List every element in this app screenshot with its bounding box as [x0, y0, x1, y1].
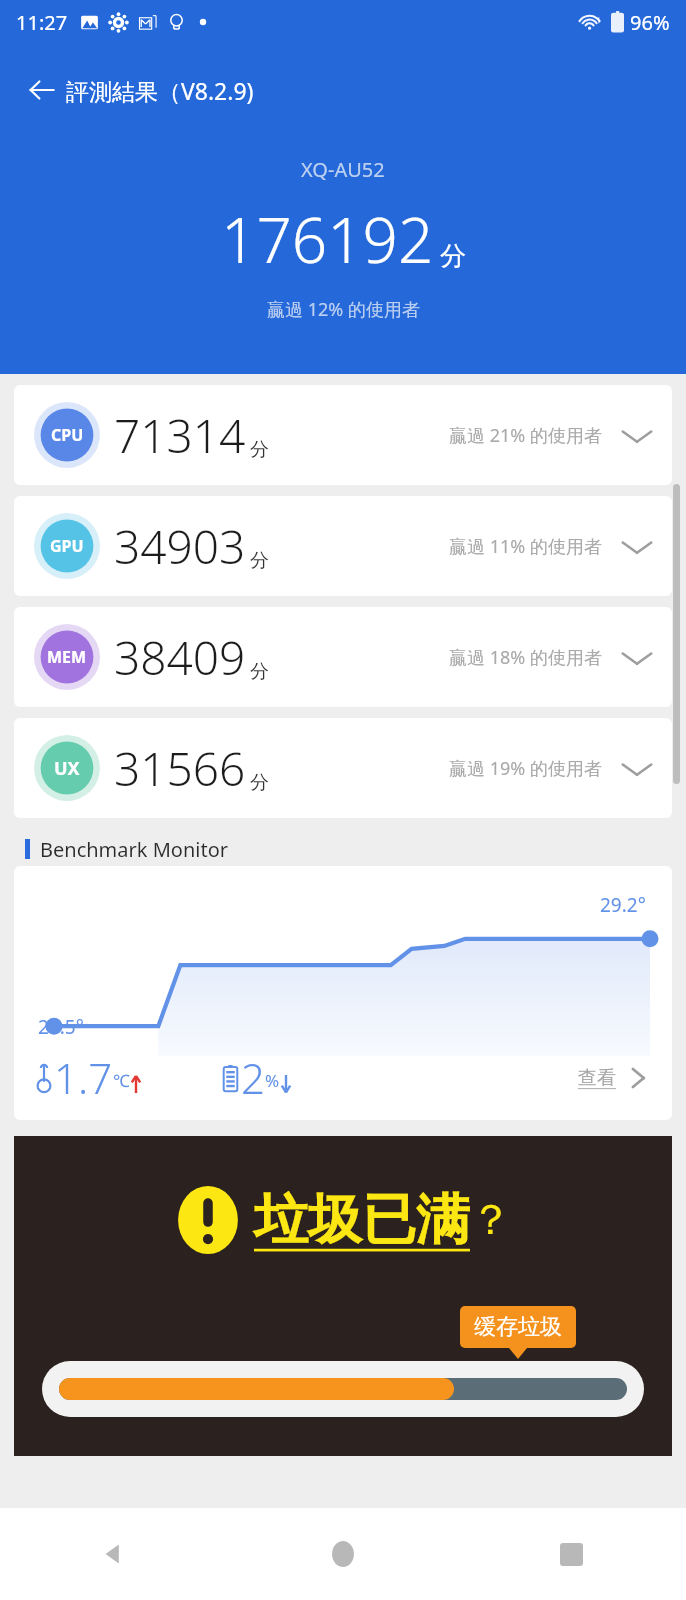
staticText: 176192	[221, 197, 434, 281]
staticText: 贏過 11% 的使用者	[449, 534, 602, 559]
staticText: CPU	[51, 424, 84, 446]
staticText: 垃圾已满	[254, 1186, 470, 1254]
staticText: 分	[440, 240, 466, 273]
staticText: MEM	[47, 646, 87, 668]
staticText: 1.7	[54, 1049, 113, 1106]
staticText: 分	[250, 771, 269, 795]
staticText: 分	[250, 549, 269, 573]
staticText: 評測結果（V8.2.9)	[66, 75, 254, 106]
staticText: GPU	[50, 535, 84, 557]
staticText: ℃	[113, 1069, 130, 1092]
staticText: %	[265, 1069, 280, 1092]
button[interactable]: CPU	[14, 385, 672, 485]
staticText: 2	[241, 1049, 265, 1106]
button[interactable]: Back	[18, 66, 66, 114]
staticText: 11:27	[16, 9, 68, 36]
staticText: 29.2°	[600, 892, 646, 918]
staticText: 96%	[630, 9, 670, 36]
button[interactable]: GPU	[14, 496, 672, 596]
staticText: 34903	[114, 515, 246, 578]
staticText: UX	[54, 756, 80, 781]
staticText: 31566	[114, 737, 246, 800]
button[interactable]: UX	[14, 718, 672, 818]
staticText: 贏過 19% 的使用者	[449, 756, 602, 781]
staticText: 71314	[114, 404, 246, 467]
staticText: 缓存垃圾	[474, 1313, 562, 1341]
staticText: 27.5°	[38, 1014, 84, 1040]
staticText: 38409	[114, 626, 246, 689]
staticText: 贏過 18% 的使用者	[449, 645, 602, 670]
staticText: 分	[250, 438, 269, 462]
staticText: XQ-AU52	[301, 156, 385, 183]
staticText: 查看	[578, 1066, 616, 1090]
button[interactable]: 垃圾已满	[14, 1136, 672, 1456]
staticText: 贏過 21% 的使用者	[449, 423, 602, 448]
staticText: 贏過 12% 的使用者	[267, 297, 420, 322]
staticText: 分	[250, 660, 269, 684]
button[interactable]: Back	[0, 1508, 228, 1600]
button[interactable]: 27.5°	[14, 866, 672, 1120]
button[interactable]: Recent apps	[457, 1508, 686, 1600]
staticText: Benchmark Monitor	[40, 836, 228, 863]
button[interactable]: MEM	[14, 607, 672, 707]
button[interactable]: Home	[228, 1508, 457, 1600]
staticText: ？	[470, 1194, 512, 1247]
